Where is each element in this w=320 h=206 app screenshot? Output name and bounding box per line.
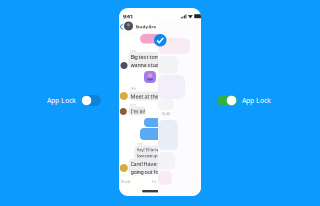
staticText: Jess: [130, 49, 135, 52]
button[interactable]: App Lock: [215, 93, 273, 108]
staticText: Ready: [120, 178, 130, 184]
staticText: Someone gra: [136, 153, 159, 158]
staticText: Fa: [152, 178, 156, 184]
staticText: I'm in!: [130, 108, 144, 115]
staticText: going out for d: [130, 168, 164, 175]
staticText: App Lock: [47, 96, 76, 105]
staticText: Tina: [137, 142, 142, 145]
staticText: Study Gro: [135, 24, 156, 29]
button[interactable]: App Lock: [45, 93, 103, 108]
staticText: 10:40: [161, 111, 170, 116]
staticText: Jess: [130, 103, 135, 106]
staticText: Meet at the lib: [130, 93, 164, 100]
staticText: Hey! I'll bring s: [136, 147, 162, 152]
staticText: 9:41: [123, 13, 133, 20]
staticText: wanna study t: [130, 61, 164, 68]
staticText: Mike: [130, 87, 136, 90]
staticText: Cant! Have you: [130, 160, 166, 168]
staticText: Big test tomorr: [130, 53, 166, 61]
staticText: App Lock: [242, 96, 271, 105]
